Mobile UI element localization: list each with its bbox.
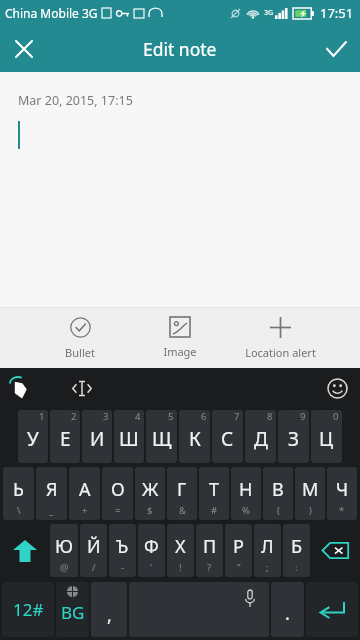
staticText: $ xyxy=(147,504,153,517)
staticText: Ю xyxy=(55,534,73,559)
staticText: 9 xyxy=(300,410,306,423)
staticText: К xyxy=(189,426,201,452)
staticText: # xyxy=(211,504,218,517)
staticText: З xyxy=(288,426,299,452)
staticText: ; xyxy=(266,561,269,574)
staticText: И xyxy=(90,426,105,452)
button[interactable]: Save note xyxy=(312,26,360,72)
staticText: + xyxy=(82,504,88,517)
staticText: ? xyxy=(207,561,212,574)
staticText: Ь xyxy=(13,477,24,502)
staticText: . xyxy=(285,601,290,626)
button[interactable]: А xyxy=(69,467,100,520)
button[interactable]: Handwriting input xyxy=(4,371,38,405)
staticText: = xyxy=(115,504,121,517)
staticText: У xyxy=(27,426,39,452)
button[interactable]: , xyxy=(91,582,127,637)
button[interactable]: 8 xyxy=(245,410,276,463)
button[interactable]: Т xyxy=(199,467,229,520)
button[interactable]: Н xyxy=(231,467,261,520)
staticText: Ш xyxy=(119,426,139,452)
button[interactable]: Image xyxy=(130,308,230,368)
staticText: * xyxy=(339,504,345,517)
staticText: Image xyxy=(163,344,197,359)
button[interactable]: Mar 20, 2015, 17:15 xyxy=(0,72,360,307)
staticText: ( xyxy=(277,504,280,517)
staticText: 17:51 xyxy=(320,4,354,22)
staticText: Х xyxy=(175,534,186,559)
staticText: 4 xyxy=(135,410,141,423)
staticText: Д xyxy=(254,426,268,452)
button[interactable]: М xyxy=(295,467,325,520)
button[interactable]: BG xyxy=(56,582,89,637)
button[interactable]: 4 xyxy=(114,410,144,463)
staticText: ' xyxy=(150,561,153,574)
staticText: " xyxy=(237,561,241,574)
button[interactable]: Б xyxy=(283,524,310,577)
staticText: : xyxy=(295,561,298,574)
staticText: Ф xyxy=(144,534,159,559)
button[interactable]: 9 xyxy=(278,410,309,463)
staticText: Щ xyxy=(152,426,172,452)
button[interactable]: Bullet xyxy=(30,308,130,368)
staticText: ) xyxy=(309,504,312,517)
button[interactable]: Ф xyxy=(138,524,165,577)
button[interactable]: Cursor control xyxy=(65,371,99,405)
staticText: Й xyxy=(87,534,101,559)
button[interactable]: 0 xyxy=(311,410,342,463)
button[interactable]: 7 xyxy=(212,410,243,463)
button[interactable]: Ж xyxy=(135,467,165,520)
staticText: 2 xyxy=(71,410,77,423)
button[interactable]: Ч xyxy=(327,467,357,520)
staticText: BG xyxy=(61,601,85,624)
staticText: С xyxy=(221,426,234,452)
button[interactable]: Ь xyxy=(3,467,34,520)
staticText: ! xyxy=(179,561,182,574)
button[interactable]: 2 xyxy=(50,410,80,463)
staticText: 3 xyxy=(103,410,109,423)
staticText: _ xyxy=(49,504,54,517)
button[interactable]: 1 xyxy=(18,410,48,463)
staticText: П xyxy=(203,534,217,559)
button[interactable]: 12# xyxy=(2,582,54,637)
staticText: А xyxy=(79,477,91,502)
staticText: Б xyxy=(291,534,303,559)
button[interactable]: Г xyxy=(167,467,197,520)
button[interactable]: 6 xyxy=(179,410,210,463)
staticText: Л xyxy=(261,534,274,559)
staticText: Mar 20, 2015, 17:15 xyxy=(18,92,133,109)
staticText: Я xyxy=(46,477,58,502)
staticText: М xyxy=(302,477,319,502)
button[interactable]: П xyxy=(196,524,223,577)
button[interactable]: В xyxy=(263,467,293,520)
button[interactable]: Backspace xyxy=(312,524,358,577)
button[interactable]: Close xyxy=(0,26,48,72)
button[interactable]: . xyxy=(271,582,304,637)
staticText: 0 xyxy=(333,410,339,423)
staticText: В xyxy=(272,477,284,502)
button[interactable]: 5 xyxy=(146,410,177,463)
staticText: Ц xyxy=(319,426,334,452)
button[interactable]: О xyxy=(102,467,133,520)
staticText: - xyxy=(121,561,125,574)
button[interactable]: Enter xyxy=(306,582,358,637)
button[interactable]: Й xyxy=(80,524,107,577)
staticText: 1 xyxy=(39,410,45,423)
button[interactable]: Х xyxy=(167,524,194,577)
staticText: Е xyxy=(60,426,71,452)
button[interactable]: 3 xyxy=(82,410,112,463)
button[interactable]: Л xyxy=(254,524,281,577)
staticText: / xyxy=(92,561,96,574)
button[interactable]: Ъ xyxy=(109,524,136,577)
button[interactable]: Ю xyxy=(50,524,78,577)
button[interactable]: Я xyxy=(36,467,67,520)
staticText: % xyxy=(242,504,250,517)
button[interactable]: Space xyxy=(129,582,269,637)
staticText: Edit note xyxy=(143,37,217,61)
button[interactable]: Location alert xyxy=(230,308,330,368)
button[interactable]: Emoji xyxy=(320,371,354,405)
staticText: Ъ xyxy=(116,534,129,559)
button[interactable]: Shift xyxy=(2,524,48,577)
button[interactable]: Р xyxy=(225,524,252,577)
staticText: Т xyxy=(209,477,220,502)
